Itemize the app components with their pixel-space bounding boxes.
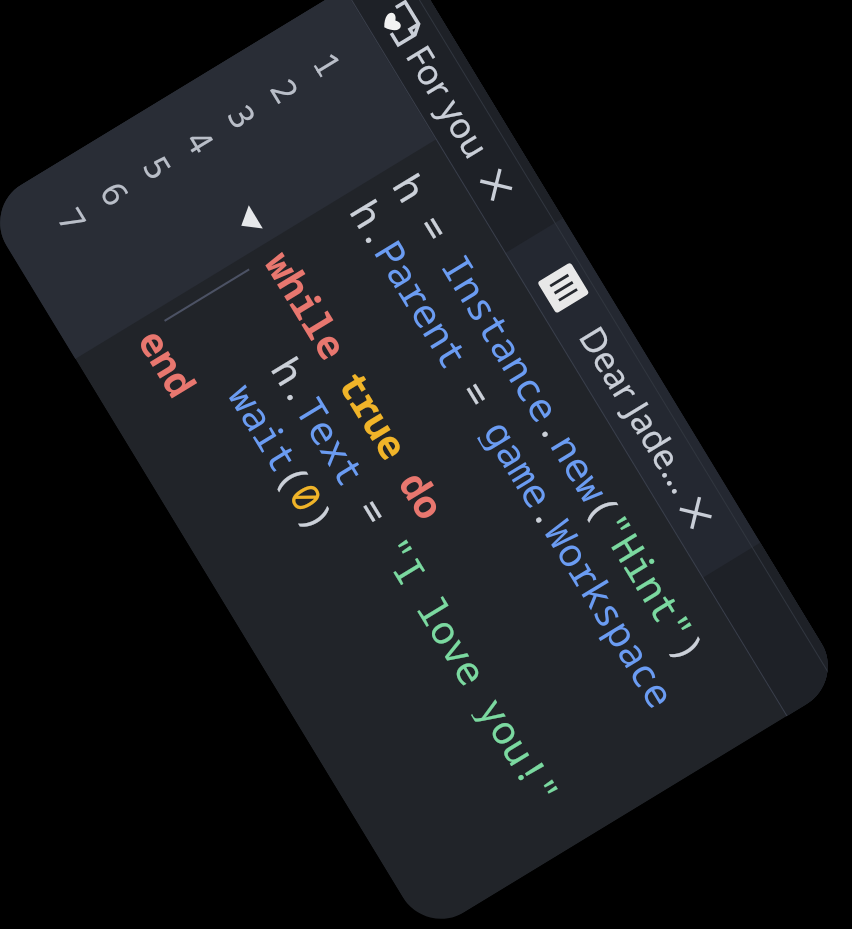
staticText: Dear Jade... (568, 317, 707, 503)
staticText: 4 (175, 121, 226, 162)
staticText: 5 (133, 147, 183, 188)
staticText: while true do (257, 241, 458, 528)
staticText: 3 (217, 95, 268, 137)
staticText: wait(0) (172, 293, 348, 539)
staticText: h = Instance.new("Hint") (384, 164, 719, 670)
button[interactable]: Close For you tab (451, 141, 541, 229)
staticText: 1 (303, 43, 353, 85)
staticText: For you (395, 36, 501, 167)
other: Collapse block (234, 205, 263, 237)
staticText: 7 (47, 199, 98, 240)
staticText: 6 (90, 173, 140, 214)
staticText: 2 (260, 69, 310, 111)
button[interactable]: Close Dear Jade tab (650, 469, 741, 557)
staticText: h.Text = "I love you!" (214, 267, 573, 813)
button[interactable] (344, 0, 563, 253)
staticText: end (130, 318, 209, 405)
staticText: h.Parent = game.Workspace (342, 190, 689, 716)
